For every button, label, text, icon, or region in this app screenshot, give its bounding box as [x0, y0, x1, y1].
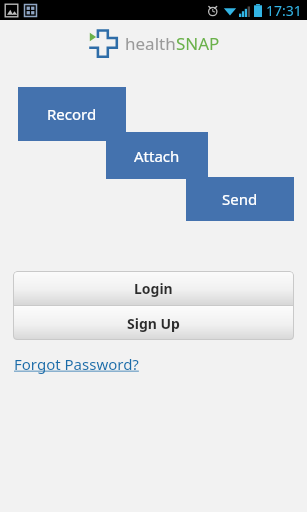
staticText: 17:31 — [266, 1, 302, 20]
staticText: Forgot Password? — [14, 354, 139, 374]
staticText: Attach — [134, 146, 180, 166]
staticText: health — [125, 32, 176, 55]
staticText: Login — [134, 279, 173, 298]
button[interactable]: Send — [186, 177, 294, 221]
staticText: SNAP — [176, 32, 220, 55]
button[interactable]: Login — [13, 271, 294, 305]
button[interactable]: Record — [18, 87, 126, 141]
button[interactable]: Attach — [106, 132, 208, 179]
button[interactable]: Sign Up — [13, 306, 294, 340]
button[interactable]: Forgot Password? — [14, 352, 139, 376]
staticText: Sign Up — [127, 314, 180, 333]
staticText: Send — [222, 189, 258, 209]
staticText: Record — [47, 104, 97, 124]
